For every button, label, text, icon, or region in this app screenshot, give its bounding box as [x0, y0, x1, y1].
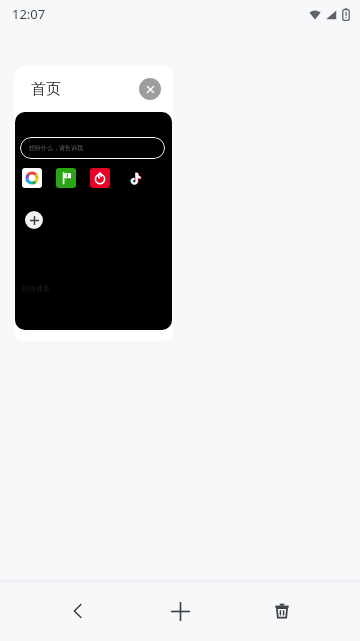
- button[interactable]: 关闭: [139, 78, 161, 100]
- staticText: 12:07: [12, 5, 46, 23]
- button[interactable]: 删除: [258, 587, 306, 635]
- button[interactable]: 网易云音乐: [90, 168, 110, 188]
- button[interactable]: 新建标签页: [156, 587, 204, 635]
- button[interactable]: 搜狗: [22, 168, 42, 188]
- button[interactable]: 绿色应用: [56, 168, 76, 188]
- staticText: 热搜榜单: [22, 284, 50, 293]
- button[interactable]: 首页: [14, 66, 173, 341]
- button[interactable]: 返回: [54, 587, 102, 635]
- button[interactable]: 添加: [25, 211, 43, 229]
- button[interactable]: 想听什么，请告诉我: [20, 137, 165, 159]
- staticText: 想听什么，请告诉我: [29, 144, 83, 152]
- button[interactable]: 抖音: [124, 168, 144, 188]
- staticText: 首页: [31, 80, 61, 99]
